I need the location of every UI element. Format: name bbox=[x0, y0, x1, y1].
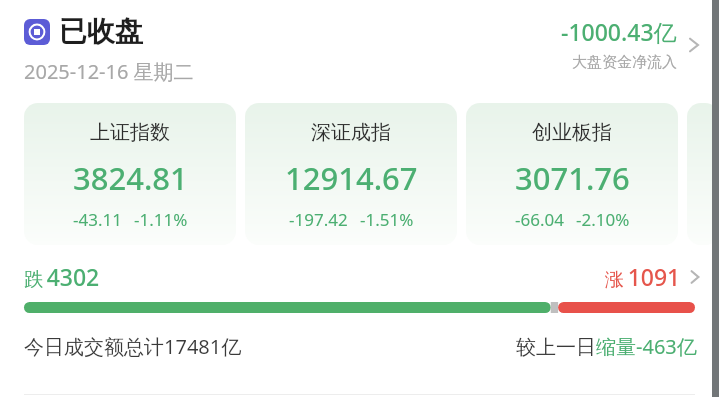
staticText: 跌 4302 bbox=[24, 261, 100, 292]
staticText: 涨 1091 bbox=[605, 261, 681, 292]
staticText: 大盘资金净流入 bbox=[572, 53, 677, 72]
staticText: 12914.67 bbox=[285, 157, 418, 199]
button[interactable]: 创业板指 bbox=[466, 103, 678, 245]
staticText: 较上一日缩量-463亿 bbox=[516, 333, 697, 360]
staticText: 2025-12-16 星期二 bbox=[24, 58, 194, 85]
staticText: 深证成指 bbox=[311, 120, 391, 145]
button[interactable]: 深证成指 bbox=[245, 103, 457, 245]
staticText: 今日成交额总计17481亿 bbox=[24, 333, 242, 360]
staticText: -66.04 bbox=[515, 208, 564, 231]
staticText: -2.10% bbox=[576, 208, 630, 231]
button[interactable]: 跌 4302 bbox=[24, 261, 701, 292]
staticText: -1.11% bbox=[134, 208, 188, 231]
staticText: 创业板指 bbox=[532, 120, 612, 145]
staticText: -43.11 bbox=[73, 208, 122, 231]
staticText: -1.51% bbox=[360, 208, 414, 231]
button[interactable] bbox=[687, 103, 719, 245]
staticText: 3824.81 bbox=[73, 157, 188, 199]
button[interactable]: -1000.43亿 bbox=[557, 14, 701, 72]
staticText: -1000.43亿 bbox=[561, 16, 677, 47]
staticText: 已收盘 bbox=[59, 14, 143, 49]
button[interactable]: 上证指数 bbox=[24, 103, 236, 245]
staticText: 3071.76 bbox=[515, 157, 630, 199]
staticText: 上证指数 bbox=[90, 120, 170, 145]
staticText: -197.42 bbox=[289, 208, 348, 231]
